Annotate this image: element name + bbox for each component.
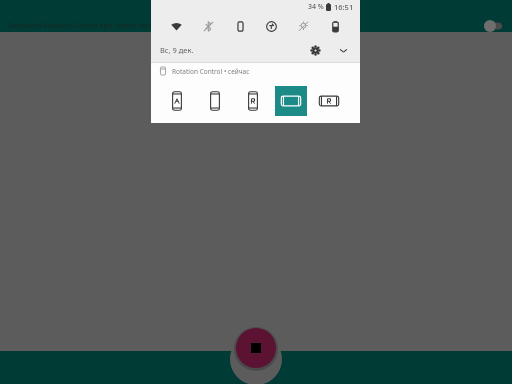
button[interactable]: Expand [334, 41, 352, 59]
button[interactable]: Settings [306, 41, 324, 59]
button[interactable]: Battery saver [324, 15, 346, 37]
button[interactable]: Bluetooth off [197, 15, 219, 37]
button[interactable]: Rotation mode [199, 86, 231, 116]
staticText: 16:51 [334, 2, 354, 12]
button[interactable]: Wi-Fi [165, 15, 187, 37]
staticText: Запускать Rotation Control при старте си… [8, 21, 474, 31]
button[interactable]: Rotation mode [237, 86, 269, 116]
staticText: Вс, 9 дек. [160, 45, 194, 55]
button[interactable]: Rotation mode [313, 86, 345, 116]
button[interactable]: Запускать Rotation Control при старте си… [0, 14, 512, 38]
button[interactable]: Do not disturb [260, 15, 282, 37]
button[interactable]: Rotation Control • сейчас [151, 63, 360, 123]
button[interactable]: Location off [292, 15, 314, 37]
staticText: 34 % [308, 2, 324, 12]
button[interactable]: Rotation mode [161, 86, 193, 116]
button[interactable] [474, 17, 504, 35]
staticText: Rotation Control • сейчас [172, 67, 250, 76]
button[interactable]: Rotation mode [275, 86, 307, 116]
button[interactable]: Auto rotate [229, 15, 251, 37]
